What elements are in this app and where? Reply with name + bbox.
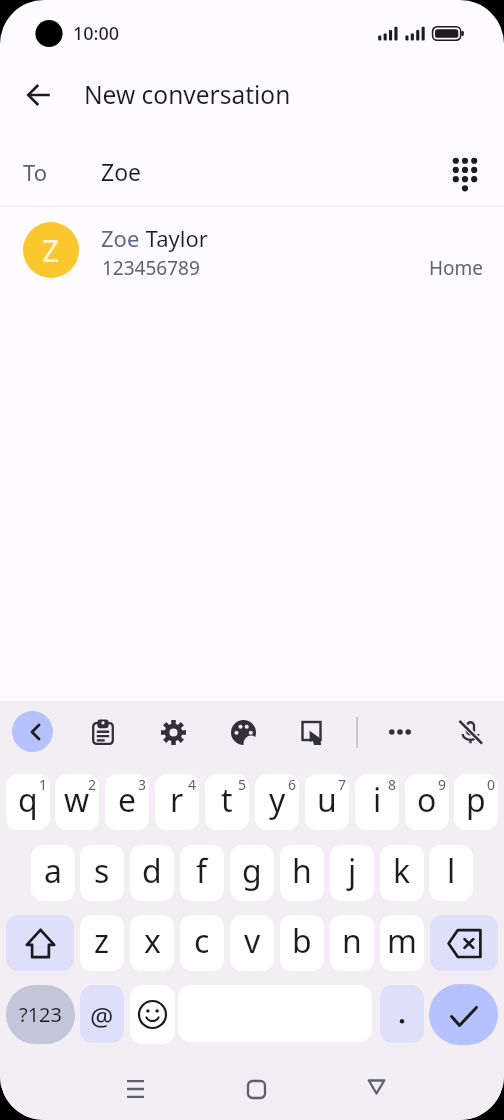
- button[interactable]: Recent apps: [110, 1063, 160, 1113]
- button[interactable]: l: [429, 845, 473, 901]
- button[interactable]: Clipboard: [82, 711, 124, 753]
- staticText: To: [23, 157, 48, 187]
- staticText: 2: [88, 775, 97, 794]
- button[interactable]: Z: [0, 207, 504, 293]
- staticText: i: [373, 778, 382, 822]
- staticText: t: [221, 778, 233, 822]
- button[interactable]: k: [380, 845, 424, 901]
- button[interactable]: n: [330, 915, 374, 971]
- button[interactable]: ?123: [6, 985, 75, 1044]
- button[interactable]: p: [454, 774, 498, 830]
- button[interactable]: j: [330, 845, 374, 901]
- button[interactable]: h: [280, 845, 324, 901]
- staticText: p: [466, 778, 486, 822]
- staticText: y: [269, 778, 286, 822]
- staticText: Taylor: [140, 223, 208, 253]
- staticText: 8: [388, 775, 397, 794]
- staticText: d: [142, 849, 162, 893]
- button[interactable]: i: [355, 774, 399, 830]
- staticText: c: [194, 919, 210, 963]
- staticText: 9: [438, 775, 447, 794]
- button[interactable]: y: [255, 774, 299, 830]
- staticText: 5: [238, 775, 247, 794]
- staticText: 7: [338, 775, 347, 794]
- button[interactable]: g: [230, 845, 274, 901]
- button[interactable]: @: [80, 985, 124, 1043]
- button[interactable]: z: [80, 915, 124, 971]
- button[interactable]: Themes: [222, 711, 264, 753]
- staticText: q: [18, 778, 38, 822]
- staticText: 6: [288, 775, 297, 794]
- staticText: @: [90, 998, 114, 1033]
- button[interactable]: a: [31, 845, 75, 901]
- button[interactable]: w: [55, 774, 99, 830]
- button[interactable]: t: [205, 774, 249, 830]
- button[interactable]: o: [405, 774, 449, 830]
- staticText: 3: [138, 775, 147, 794]
- button[interactable]: Back: [351, 1061, 401, 1111]
- button[interactable]: Settings: [152, 711, 194, 753]
- button[interactable]: r: [155, 774, 199, 830]
- staticText: Zoe: [101, 223, 140, 253]
- button[interactable]: d: [130, 845, 174, 901]
- button[interactable]: Send: [429, 984, 498, 1045]
- button[interactable]: Back: [15, 71, 63, 119]
- staticText: s: [94, 849, 110, 893]
- staticText: 1: [39, 775, 48, 794]
- staticText: v: [244, 919, 261, 963]
- button[interactable]: c: [180, 915, 224, 971]
- staticText: Home: [429, 255, 484, 281]
- staticText: o: [417, 778, 437, 822]
- staticText: b: [292, 919, 312, 963]
- button[interactable]: Previous: [12, 711, 53, 752]
- staticText: l: [447, 849, 456, 893]
- staticText: k: [393, 849, 411, 893]
- staticText: j: [348, 849, 357, 893]
- staticText: u: [317, 778, 337, 822]
- button[interactable]: m: [380, 915, 424, 971]
- button[interactable]: Voice input off: [449, 711, 491, 753]
- button[interactable]: u: [305, 774, 349, 830]
- button[interactable]: s: [80, 845, 124, 901]
- button[interactable]: b: [280, 915, 324, 971]
- button[interactable]: f: [180, 845, 224, 901]
- staticText: 10:00: [73, 21, 120, 46]
- staticText: w: [64, 778, 90, 822]
- staticText: 4: [188, 775, 197, 794]
- staticText: 0: [487, 775, 496, 794]
- staticText: m: [387, 919, 417, 963]
- button[interactable]: x: [130, 915, 174, 971]
- staticText: n: [342, 919, 362, 963]
- staticText: r: [170, 778, 184, 822]
- staticText: h: [292, 849, 312, 893]
- staticText: ?123: [19, 1001, 62, 1028]
- button[interactable]: Emoji: [130, 985, 175, 1044]
- button[interactable]: Handwriting: [292, 711, 334, 753]
- staticText: g: [242, 849, 262, 893]
- button[interactable]: More options: [379, 711, 421, 753]
- staticText: 123456789: [102, 255, 200, 281]
- staticText: x: [144, 919, 161, 963]
- staticText: f: [196, 849, 208, 893]
- staticText: z: [94, 919, 110, 963]
- staticText: Z: [42, 230, 60, 271]
- button[interactable]: v: [230, 915, 274, 971]
- staticText: New conversation: [84, 78, 291, 111]
- staticText: a: [44, 849, 62, 893]
- button[interactable]: [380, 985, 424, 1043]
- button[interactable]: Shift: [6, 915, 74, 971]
- button[interactable]: q: [6, 774, 50, 830]
- button[interactable]: Home: [231, 1064, 281, 1114]
- staticText: e: [118, 778, 137, 822]
- staticText: Zoe: [101, 156, 142, 187]
- button[interactable]: Dial pad: [441, 149, 489, 197]
- button[interactable]: Backspace: [430, 915, 498, 971]
- button[interactable]: e: [105, 774, 149, 830]
